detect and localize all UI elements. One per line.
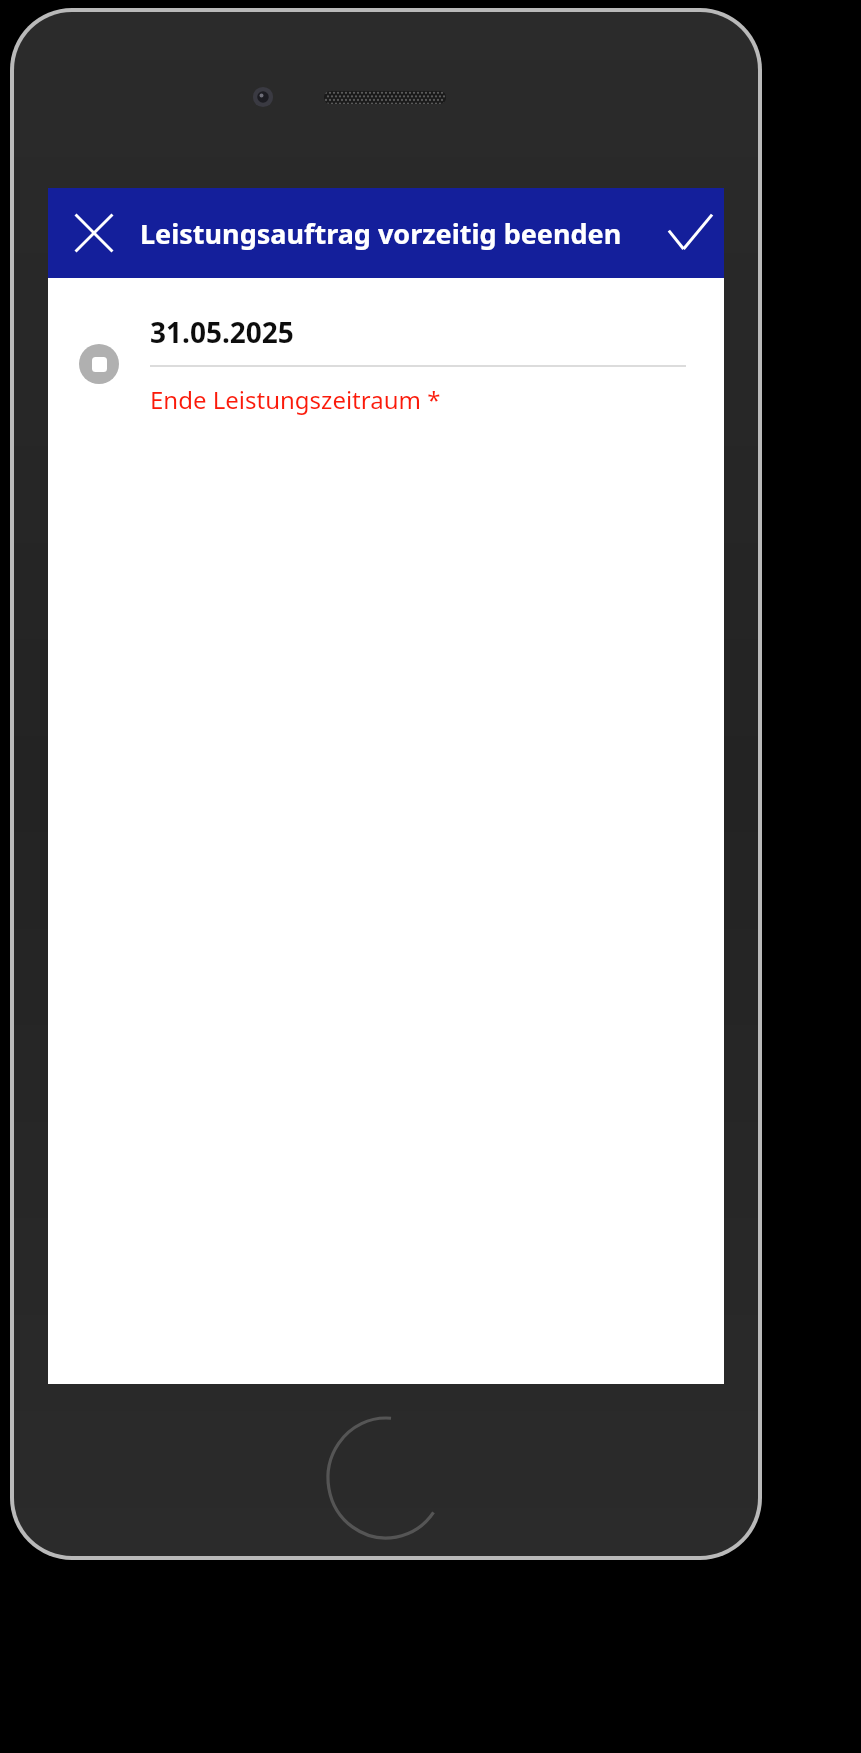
button[interactable]: Bestätigen bbox=[660, 188, 724, 278]
button[interactable]: Leistungsauftrag vorzeitig beenden bbox=[140, 188, 660, 278]
button[interactable]: Schließen bbox=[48, 188, 140, 278]
staticText: Leistungsauftrag vorzeitig beenden bbox=[140, 215, 622, 252]
staticText: Ende Leistungszeitraum * bbox=[150, 383, 441, 416]
staticText: 31.05.2025 bbox=[150, 313, 294, 351]
button[interactable]: 31.05.2025 bbox=[48, 278, 724, 426]
